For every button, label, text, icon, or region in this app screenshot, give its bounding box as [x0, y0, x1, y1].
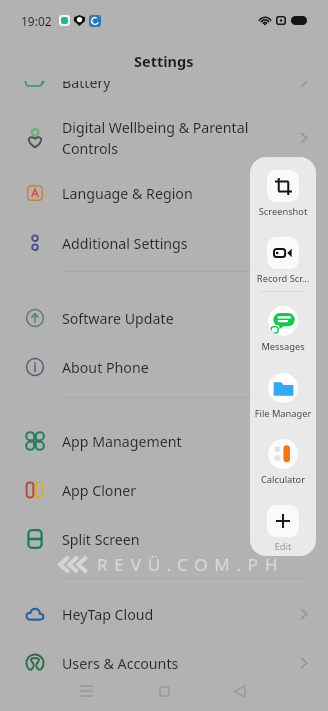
staticText: Settings	[134, 51, 194, 71]
staticText: Additional Settings	[62, 234, 287, 253]
staticText: REVÜ.COM.PH	[97, 553, 285, 576]
staticText: Digital Wellbeing & Parental Controls	[62, 118, 287, 159]
button[interactable]: Battery	[0, 81, 328, 104]
staticText: HeyTap Cloud	[62, 605, 287, 624]
button[interactable]: Screenshot	[250, 170, 316, 218]
staticText: Language & Region	[62, 184, 287, 203]
button[interactable]: Record Scr...	[250, 237, 316, 285]
button[interactable]: Users & Accounts	[0, 641, 328, 685]
button[interactable]: Additional Settings	[0, 221, 328, 265]
staticText: App Management	[62, 432, 287, 451]
staticText: Split Screen	[62, 530, 287, 549]
staticText: Users & Accounts	[62, 654, 287, 673]
staticText: Messages	[250, 340, 316, 353]
button[interactable]: Back	[214, 673, 266, 709]
button[interactable]: About Phone	[0, 345, 328, 389]
button[interactable]: App Management	[0, 419, 328, 463]
button[interactable]: Home	[138, 673, 190, 709]
staticText: Screenshot	[250, 205, 316, 218]
button[interactable]: Messages	[250, 305, 316, 353]
button[interactable]: Edit	[250, 505, 316, 553]
staticText: Battery	[62, 81, 287, 92]
button[interactable]: Language & Region	[0, 171, 328, 215]
staticText: File Manager	[250, 407, 316, 420]
button[interactable]: Digital Wellbeing & Parental Controls	[0, 115, 328, 161]
staticText: Software Update	[62, 309, 287, 328]
staticText: About Phone	[62, 358, 287, 377]
button[interactable]: App Cloner	[0, 468, 328, 512]
staticText: App Cloner	[62, 481, 287, 500]
button[interactable]: Software Update	[0, 296, 328, 340]
button[interactable]: HeyTap Cloud	[0, 592, 328, 636]
button[interactable]: Recent apps	[60, 673, 112, 709]
button[interactable]: Split Screen	[0, 517, 328, 561]
staticText: Record Scr...	[250, 272, 316, 285]
staticText: Edit	[250, 540, 316, 553]
button[interactable]: File Manager	[250, 372, 316, 420]
staticText: Calculator	[250, 473, 316, 486]
button[interactable]: Calculator	[250, 438, 316, 486]
staticText: 19:02	[21, 13, 52, 29]
